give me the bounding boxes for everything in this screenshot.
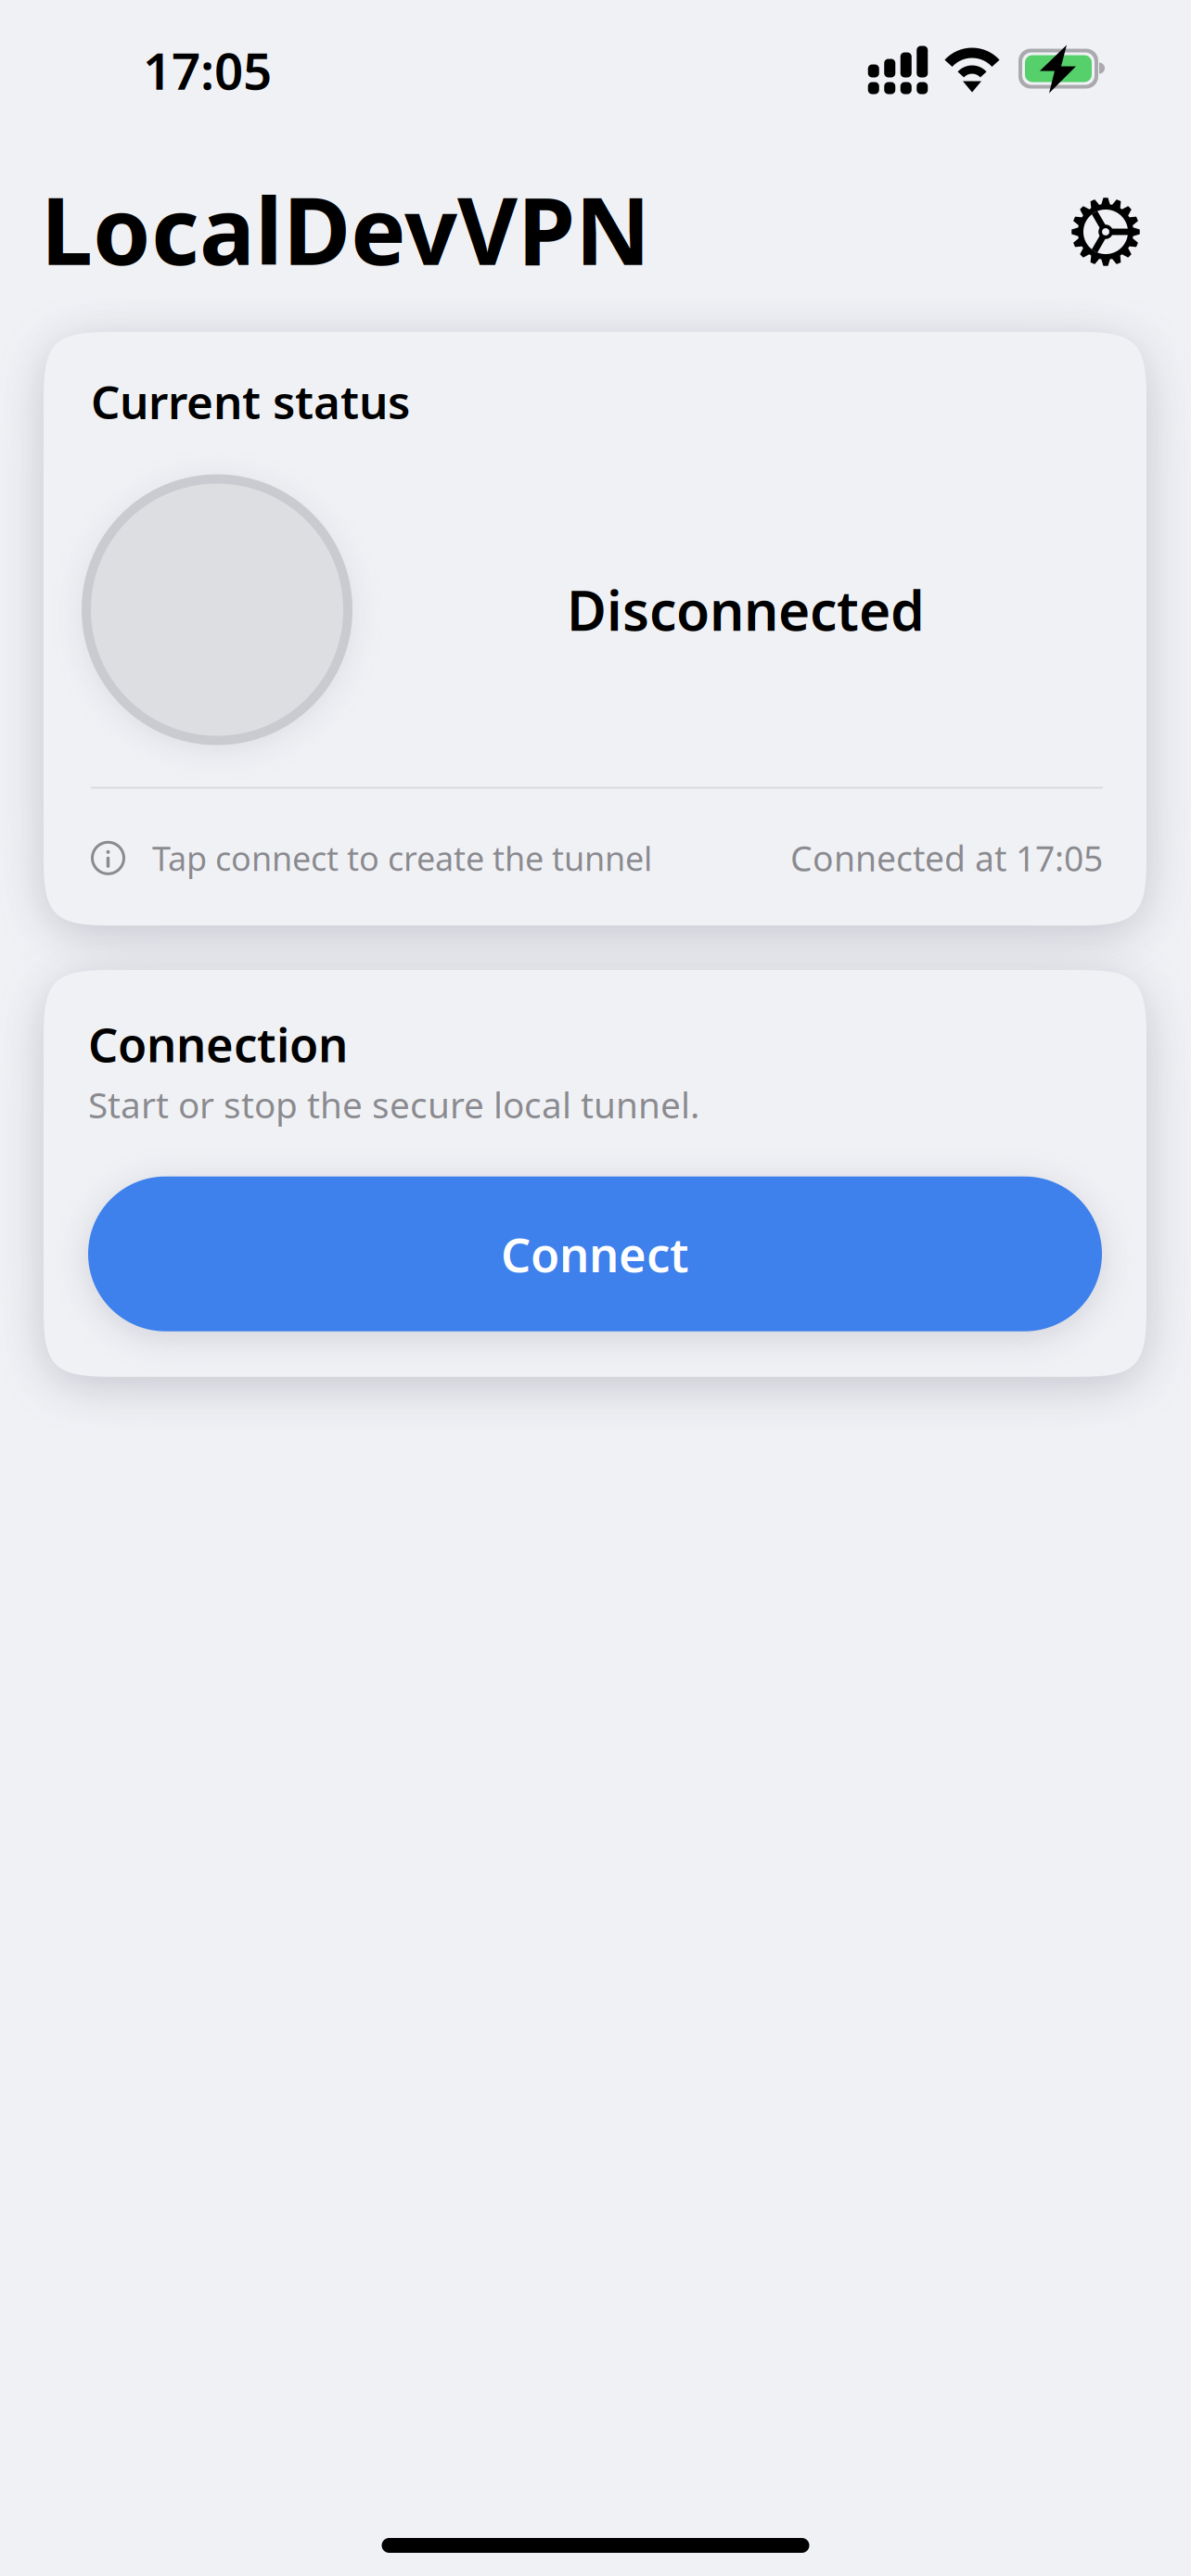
button[interactable]: Connect xyxy=(88,1176,1102,1331)
staticText: Connected at 17:05 xyxy=(790,835,1103,881)
staticText: Disconnected xyxy=(567,574,925,646)
staticText: 17:05 xyxy=(143,36,272,104)
button[interactable]: Settings xyxy=(1055,178,1157,280)
staticText: Start or stop the secure local tunnel. xyxy=(88,1081,699,1128)
staticText: Tap connect to create the tunnel xyxy=(152,836,652,880)
staticText: Connection xyxy=(88,1013,348,1075)
staticText: Connect xyxy=(501,1223,689,1285)
staticText: Current status xyxy=(91,371,410,432)
staticText: LocalDevVPN xyxy=(41,167,650,291)
